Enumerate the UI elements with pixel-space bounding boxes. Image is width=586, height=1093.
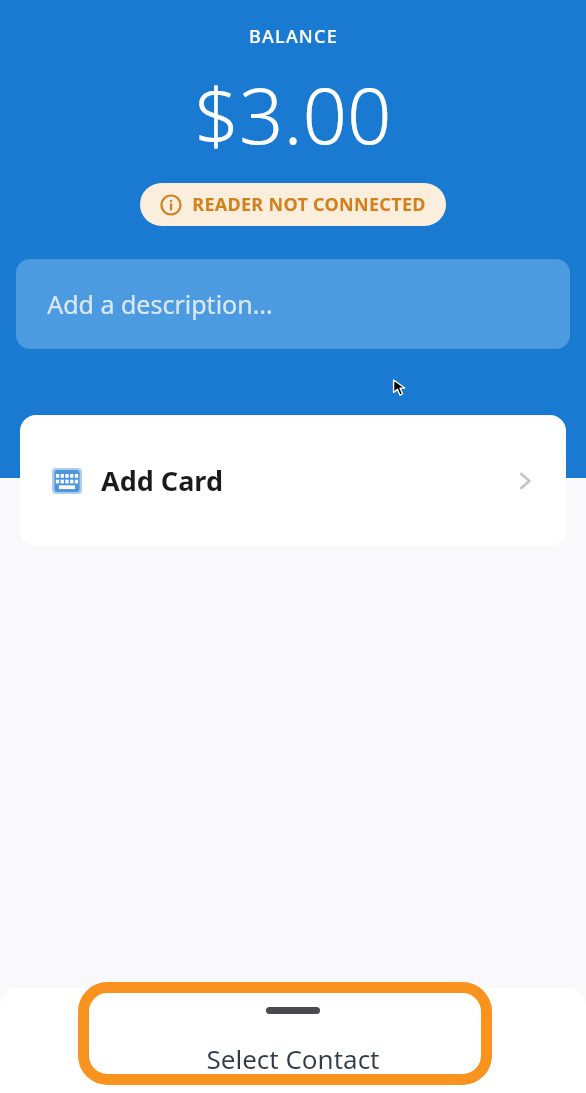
button[interactable]: Add Card xyxy=(20,415,566,546)
staticText: Add Card xyxy=(101,462,223,499)
staticText: Add a description... xyxy=(47,287,273,321)
staticText: $3.00 xyxy=(194,61,392,167)
button[interactable]: READER NOT CONNECTED xyxy=(140,183,446,226)
staticText: Select Contact xyxy=(206,1041,380,1076)
button[interactable]: Select Contact xyxy=(0,988,586,1093)
staticText: READER NOT CONNECTED xyxy=(192,192,426,217)
button[interactable]: Add a description... xyxy=(16,259,570,349)
staticText: BALANCE xyxy=(249,24,338,49)
